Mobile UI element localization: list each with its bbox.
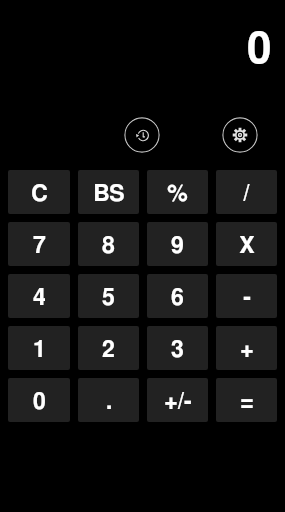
staticText: % — [167, 183, 188, 206]
staticText: 0 — [33, 391, 46, 414]
staticText: 0 — [247, 28, 272, 72]
staticText: / — [243, 183, 250, 206]
button[interactable]: 2 — [78, 326, 139, 370]
staticText: 7 — [33, 235, 46, 258]
staticText: 9 — [171, 235, 184, 258]
button[interactable]: 1 — [8, 326, 70, 370]
staticText: C — [31, 183, 48, 206]
button[interactable]: 9 — [147, 222, 208, 266]
button[interactable]: 5 — [78, 274, 139, 318]
button[interactable]: 6 — [147, 274, 208, 318]
button[interactable]: - — [216, 274, 277, 318]
button[interactable]: History — [124, 117, 160, 153]
button[interactable]: X — [216, 222, 277, 266]
staticText: = — [240, 391, 254, 414]
button[interactable]: 4 — [8, 274, 70, 318]
staticText: 2 — [102, 339, 115, 362]
button[interactable]: C — [8, 170, 70, 214]
button[interactable]: + — [216, 326, 277, 370]
button[interactable]: = — [216, 378, 277, 422]
staticText: 8 — [102, 235, 115, 258]
button[interactable]: +/- — [147, 378, 208, 422]
staticText: 1 — [33, 339, 46, 362]
button[interactable]: BS — [78, 170, 139, 214]
staticText: - — [243, 287, 251, 310]
button[interactable]: . — [78, 378, 139, 422]
button[interactable]: 0 — [8, 378, 70, 422]
button[interactable]: 3 — [147, 326, 208, 370]
staticText: . — [106, 391, 112, 414]
button[interactable]: / — [216, 170, 277, 214]
button[interactable]: % — [147, 170, 208, 214]
staticText: 3 — [171, 339, 184, 362]
button[interactable]: 8 — [78, 222, 139, 266]
staticText: + — [240, 339, 254, 362]
staticText: BS — [93, 183, 125, 206]
staticText: +/- — [164, 391, 192, 414]
staticText: 6 — [171, 287, 184, 310]
staticText: 4 — [33, 287, 46, 310]
button[interactable]: 7 — [8, 222, 70, 266]
button[interactable]: Settings — [222, 117, 258, 153]
staticText: X — [239, 235, 255, 258]
staticText: 5 — [102, 287, 115, 310]
